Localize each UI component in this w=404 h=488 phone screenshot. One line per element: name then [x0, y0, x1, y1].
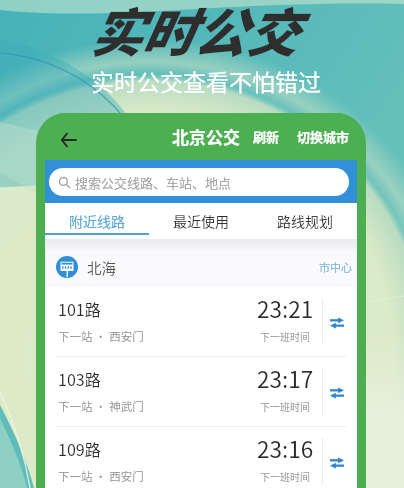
- button[interactable]: 换向: [317, 357, 357, 426]
- staticText: 23:17: [257, 362, 314, 395]
- button[interactable]: 刷新: [253, 127, 280, 146]
- staticText: 路线规划: [277, 211, 333, 231]
- staticText: 实时公交: [89, 0, 298, 67]
- staticText: 切换城市: [297, 127, 350, 146]
- button[interactable]: 101路: [45, 287, 357, 356]
- staticText: 下一站 · 西安门: [58, 468, 144, 485]
- button[interactable]: 109路: [45, 427, 357, 488]
- staticText: 109路: [58, 437, 101, 460]
- button[interactable]: 搜索公交线路、车站、地点: [49, 168, 349, 196]
- button[interactable]: 北海: [56, 243, 352, 291]
- staticText: 23:21: [257, 292, 314, 325]
- staticText: 下一班时间: [260, 399, 310, 413]
- staticText: 搜索公交线路、车站、地点: [75, 173, 232, 192]
- staticText: 下一站 · 神武门: [58, 398, 144, 415]
- button[interactable]: 最近使用: [149, 203, 253, 239]
- staticText: 最近使用: [173, 211, 229, 231]
- button[interactable]: 换向: [317, 287, 357, 356]
- staticText: 下一班时间: [260, 469, 310, 483]
- staticText: 实时公交查看不怕错过: [91, 64, 321, 97]
- staticText: 103路: [58, 367, 101, 390]
- staticText: 101路: [58, 297, 101, 320]
- staticText: 附近线路: [69, 211, 125, 231]
- button[interactable]: 103路: [45, 357, 357, 426]
- staticText: 刷新: [253, 127, 280, 146]
- button[interactable]: 换向: [317, 427, 357, 488]
- button[interactable]: 切换城市: [297, 127, 350, 146]
- button[interactable]: 返回: [53, 124, 85, 156]
- staticText: 北京公交: [172, 124, 240, 149]
- staticText: 下一站 · 西安门: [58, 328, 144, 345]
- staticText: 下一班时间: [260, 329, 310, 343]
- staticText: 北海: [87, 257, 116, 278]
- staticText: 23:16: [257, 432, 314, 465]
- button[interactable]: 路线规划: [253, 203, 357, 239]
- staticText: 市中心: [319, 259, 352, 275]
- button[interactable]: 附近线路: [45, 203, 149, 239]
